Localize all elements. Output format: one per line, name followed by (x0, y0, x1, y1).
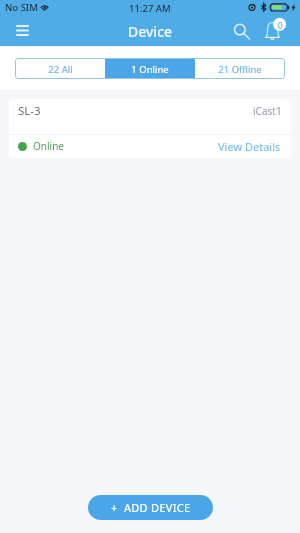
button[interactable]: Menu (11, 20, 33, 42)
button[interactable]: + ADD DEVICE (88, 495, 213, 520)
staticText: 21 Offline (218, 63, 262, 76)
button[interactable]: SL-3 (9, 99, 291, 158)
staticText: Online (33, 139, 64, 153)
staticText: 11:27 AM (129, 2, 171, 15)
staticText: Device (128, 22, 173, 41)
staticText: View Details (218, 139, 281, 154)
button[interactable]: View Details (216, 135, 283, 157)
button[interactable]: 22 All (15, 58, 105, 79)
staticText: + ADD DEVICE (111, 500, 191, 515)
button[interactable]: 1 Online (105, 58, 195, 79)
staticText: SL-3 (18, 103, 41, 119)
button[interactable]: Search (229, 17, 251, 39)
staticText: No SIM (5, 1, 38, 14)
button[interactable]: Notifications (263, 18, 289, 46)
button[interactable]: 21 Offline (195, 58, 285, 79)
staticText: 22 All (48, 63, 73, 76)
staticText: 0 (278, 20, 283, 31)
staticText: iCast1 (253, 104, 282, 118)
staticText: 1 Online (131, 63, 169, 76)
